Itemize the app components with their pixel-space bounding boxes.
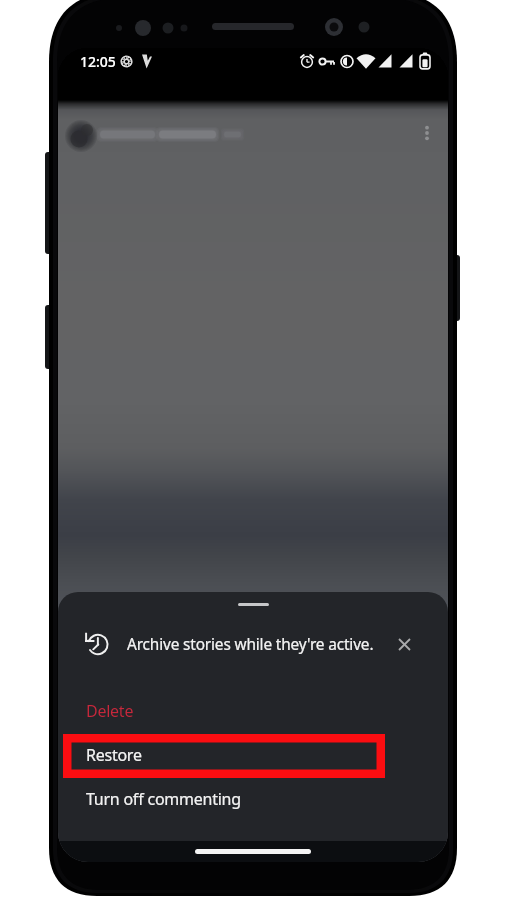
staticText: Restore — [86, 744, 142, 766]
button[interactable]: Delete — [58, 689, 448, 733]
staticText: Archive stories while they're active. — [127, 634, 374, 655]
button[interactable]: Restore — [58, 733, 448, 777]
button[interactable]: More options — [416, 122, 438, 144]
button[interactable]: Close — [391, 631, 417, 657]
staticText: Delete — [86, 700, 134, 722]
button[interactable]: Turn off commenting — [58, 777, 448, 821]
staticText: 12:05 — [80, 52, 116, 71]
button[interactable]: Archive stories while they're active. — [58, 616, 448, 672]
staticText: Turn off commenting — [86, 788, 241, 810]
